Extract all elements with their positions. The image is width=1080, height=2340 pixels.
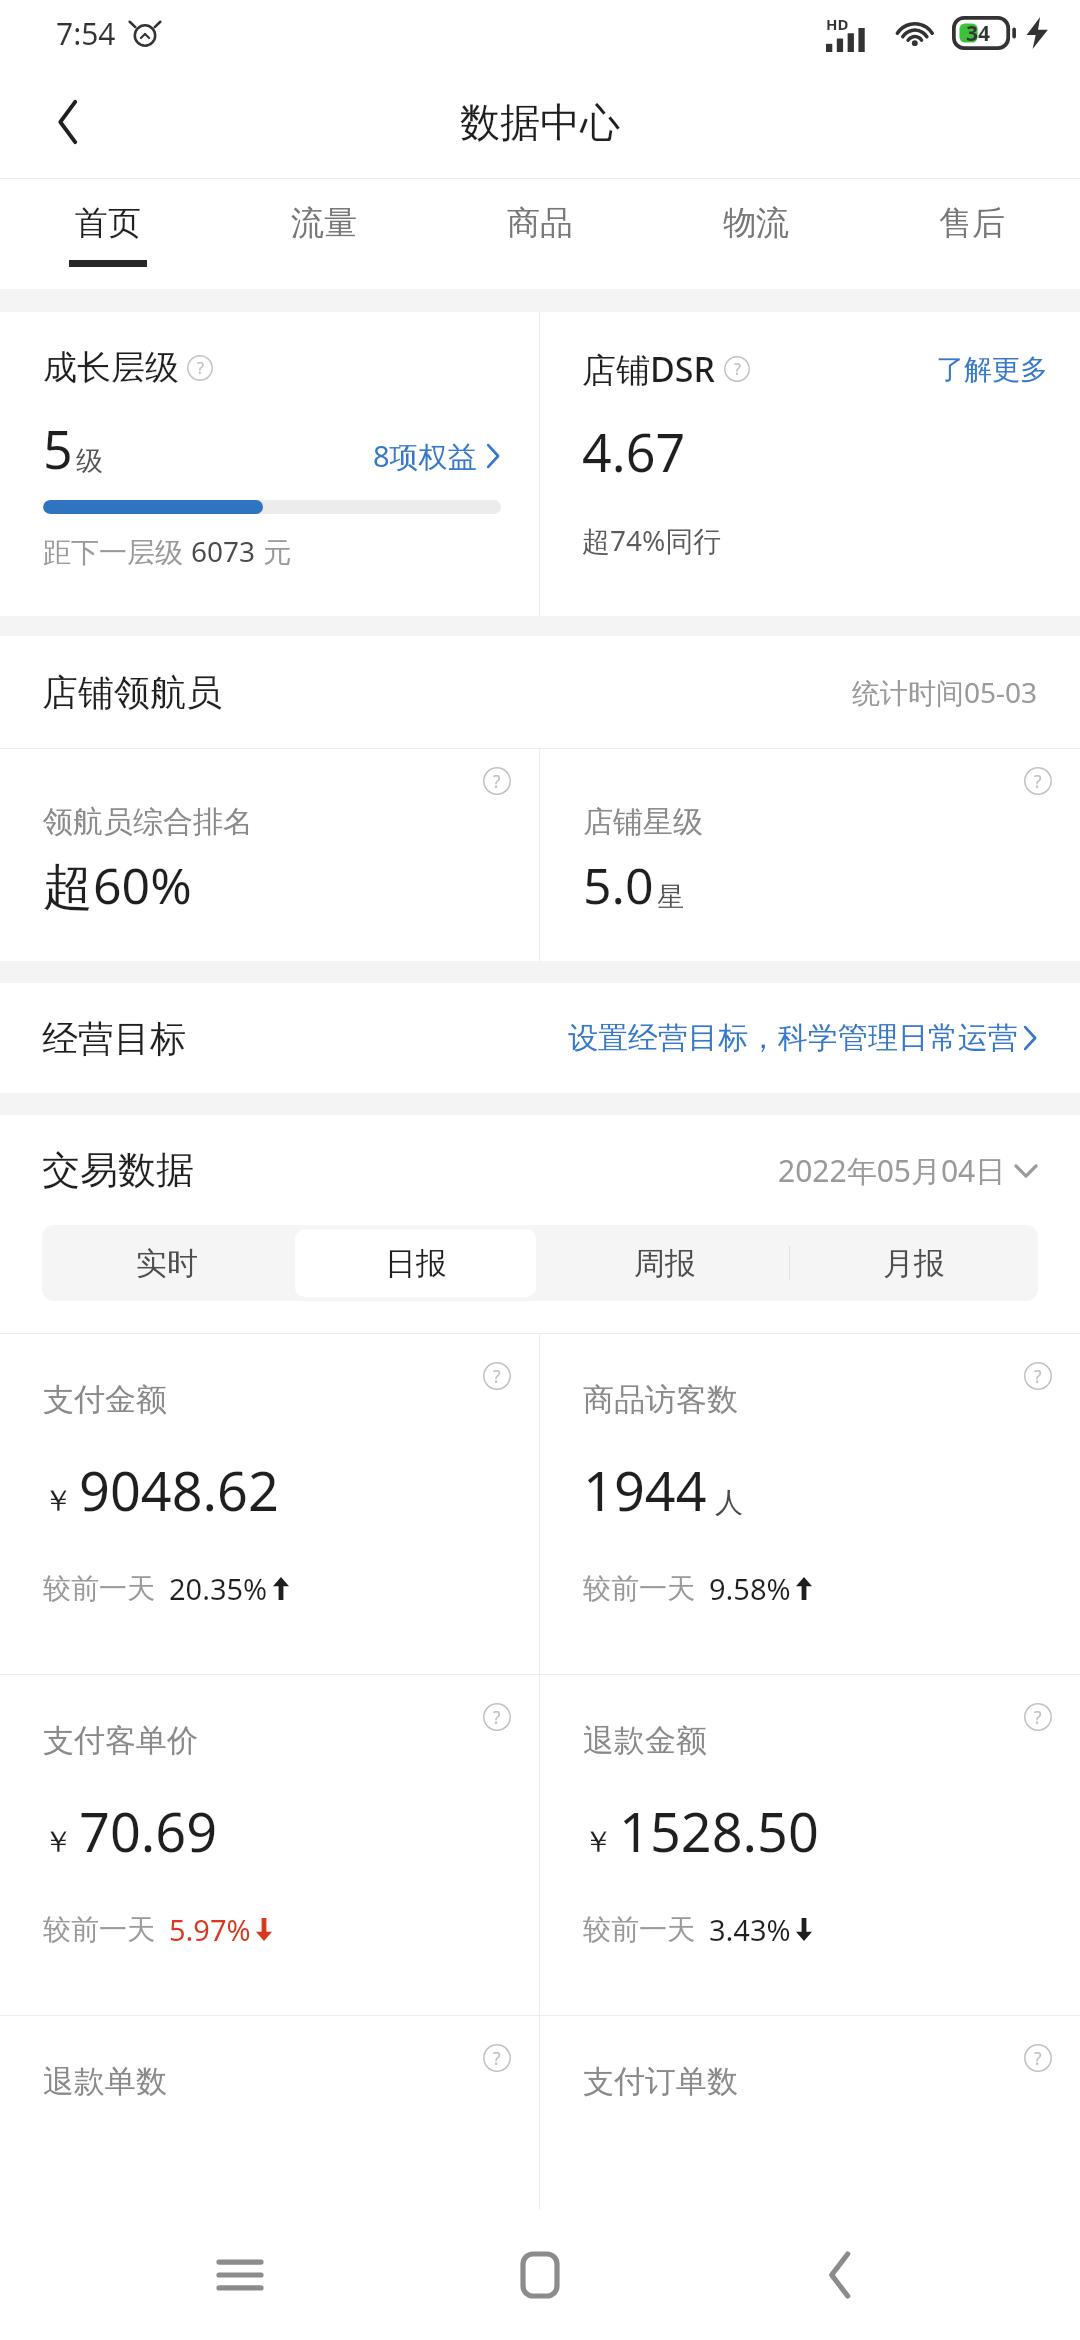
button[interactable]: 帮助 (0, 1675, 539, 2015)
button[interactable]: 商品 (432, 179, 648, 289)
button[interactable]: 帮助 (483, 1362, 511, 1390)
button[interactable]: 帮助 (0, 1334, 539, 1674)
staticText: 实时 (136, 1244, 198, 1283)
button[interactable]: 8项权益 (373, 436, 501, 476)
staticText: 领航员综合排名 (43, 803, 253, 841)
staticText: 70.69 (79, 1794, 218, 1868)
button[interactable]: 最近任务 (180, 2215, 300, 2335)
staticText: 店铺领航员 (42, 670, 222, 715)
button[interactable]: 帮助 (483, 767, 511, 795)
staticText: 9048.62 (79, 1453, 279, 1527)
staticText: ? (1034, 1705, 1042, 1729)
staticText: ? (1034, 2046, 1042, 2070)
button[interactable]: 帮助 (1024, 2044, 1052, 2072)
staticText: 34 (966, 19, 991, 48)
staticText: 元 (256, 532, 292, 570)
button[interactable]: 经营目标 (0, 983, 1080, 1093)
staticText: 6073 (191, 532, 256, 570)
staticText: 较前一天 (43, 1912, 155, 1947)
button[interactable]: 帮助 (187, 355, 213, 381)
staticText: 物流 (723, 202, 789, 244)
staticText: 2022年05月04日 (778, 1150, 1006, 1191)
button[interactable]: 2022年05月04日 (778, 1150, 1038, 1191)
staticText: 月报 (883, 1244, 945, 1283)
button[interactable]: 帮助 (540, 2016, 1080, 2210)
staticText: 支付金额 (43, 1380, 167, 1419)
staticText: ? (1034, 769, 1042, 793)
staticText: 交易数据 (42, 1146, 194, 1194)
staticText: 较前一天 (583, 1912, 695, 1947)
staticText: 较前一天 (43, 1571, 155, 1606)
button[interactable]: 帮助 (483, 1703, 511, 1731)
staticText: 日报 (385, 1244, 447, 1283)
button[interactable]: 月报 (793, 1229, 1034, 1297)
button[interactable]: 帮助 (540, 1675, 1080, 2015)
staticText: ? (197, 357, 204, 379)
staticText: 超60% (43, 851, 192, 919)
button[interactable]: 主屏幕 (480, 2215, 600, 2335)
button[interactable]: 帮助 (0, 2016, 539, 2210)
staticText: 经营目标 (42, 1016, 186, 1061)
staticText: HD (826, 14, 849, 34)
staticText: 数据中心 (460, 97, 620, 147)
button[interactable]: 流量 (216, 179, 432, 289)
staticText: 店铺DSR (582, 346, 716, 392)
staticText: 星 (657, 880, 684, 914)
staticText: ￥ (43, 1823, 73, 1861)
button[interactable]: 帮助 (540, 1334, 1080, 1674)
button[interactable]: 周报 (544, 1229, 785, 1297)
staticText: 9.58% (709, 1569, 791, 1608)
staticText: 成长层级 (43, 346, 179, 389)
button[interactable]: 售后 (864, 179, 1080, 289)
staticText: ? (493, 2046, 501, 2070)
staticText: 5 (43, 413, 73, 484)
staticText: 1528.50 (619, 1794, 819, 1868)
button[interactable]: 帮助 (483, 2044, 511, 2072)
staticText: 流量 (291, 202, 357, 244)
staticText: 8项权益 (373, 436, 477, 476)
staticText: 5.0 (583, 851, 654, 919)
staticText: 级 (76, 444, 103, 478)
button[interactable]: 日报 (295, 1229, 536, 1297)
button[interactable]: 帮助 (724, 356, 750, 382)
staticText: 支付客单价 (43, 1721, 198, 1760)
staticText: 统计时间05-03 (852, 673, 1038, 711)
staticText: 退款金额 (583, 1721, 707, 1760)
staticText: 4.67 (582, 416, 686, 487)
staticText: 5.97% (169, 1910, 251, 1949)
button[interactable]: 物流 (648, 179, 864, 289)
staticText: ￥ (43, 1482, 73, 1520)
staticText: 售后 (939, 202, 1005, 244)
staticText: 7:54 (56, 13, 116, 54)
staticText: ￥ (583, 1823, 613, 1861)
button[interactable]: 返回 (26, 80, 110, 164)
staticText: 支付订单数 (583, 2062, 738, 2101)
staticText: 周报 (634, 1244, 696, 1283)
button[interactable]: 帮助 (0, 749, 539, 961)
staticText: 了解更多 (936, 352, 1048, 387)
staticText: ? (493, 1364, 501, 1388)
staticText: 退款单数 (43, 2062, 167, 2101)
staticText: 20.35% (169, 1569, 268, 1608)
button[interactable]: 帮助 (1024, 767, 1052, 795)
button[interactable]: 了解更多 (936, 352, 1048, 387)
staticText: 设置经营目标，科学管理日常运营 (568, 1019, 1018, 1057)
staticText: 3.43% (709, 1910, 791, 1949)
staticText: 较前一天 (583, 1571, 695, 1606)
staticText: 人 (715, 1485, 743, 1520)
staticText: ? (493, 769, 501, 793)
staticText: ? (493, 1705, 501, 1729)
button[interactable]: 帮助 (1024, 1362, 1052, 1390)
staticText: 商品 (507, 202, 573, 244)
button[interactable]: 首页 (0, 179, 216, 289)
button[interactable]: 店铺DSR (540, 312, 1080, 616)
button[interactable]: 帮助 (540, 749, 1080, 961)
staticText: 商品访客数 (583, 1380, 738, 1419)
button[interactable]: 实时 (46, 1229, 287, 1297)
staticText: 超74%同行 (582, 521, 722, 559)
button[interactable]: 帮助 (1024, 1703, 1052, 1731)
button[interactable]: 返回 (780, 2215, 900, 2335)
button[interactable]: 成长层级 (0, 312, 539, 616)
staticText: ? (1034, 1364, 1042, 1388)
staticText: 店铺星级 (583, 803, 703, 841)
